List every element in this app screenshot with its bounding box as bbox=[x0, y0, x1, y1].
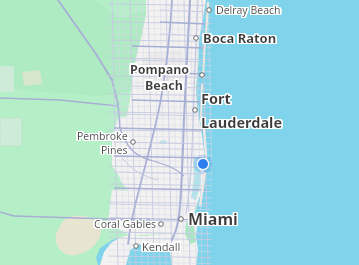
button[interactable]: Map of South Florida bbox=[0, 0, 359, 265]
